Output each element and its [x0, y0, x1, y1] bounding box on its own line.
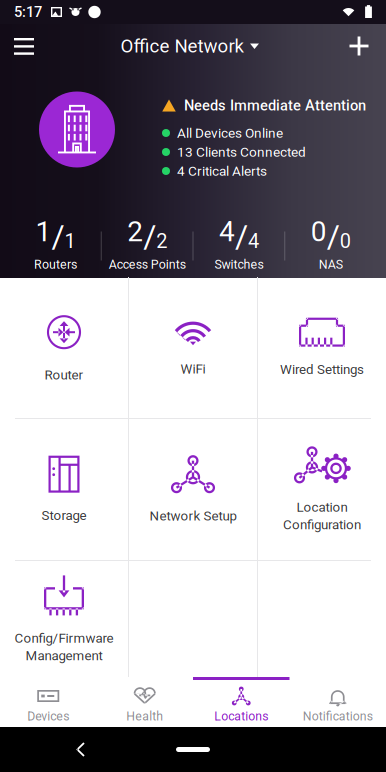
- staticText: Devices: [27, 709, 69, 723]
- staticText: 4: [248, 229, 259, 253]
- staticText: /: [51, 217, 64, 255]
- staticText: 0: [311, 215, 327, 248]
- staticText: Location: [296, 499, 347, 515]
- staticText: Health: [126, 709, 163, 723]
- staticText: 2: [127, 215, 143, 248]
- staticText: 13 Clients Connected: [177, 144, 306, 160]
- button[interactable]: Router: [0, 277, 128, 418]
- staticText: 0: [340, 229, 351, 253]
- staticText: Office Network: [120, 35, 243, 57]
- staticText: /: [235, 217, 248, 255]
- staticText: NAS: [319, 257, 343, 272]
- button[interactable]: Wired Settings: [258, 277, 386, 418]
- staticText: 4 Critical Alerts: [177, 163, 267, 179]
- button[interactable]: Storage: [0, 419, 128, 560]
- button[interactable]: Devices: [0, 677, 96, 727]
- staticText: Storage: [41, 508, 86, 523]
- staticText: /: [327, 217, 340, 255]
- staticText: 5:17: [14, 3, 42, 21]
- staticText: 1: [35, 215, 51, 248]
- button[interactable]: Location: [258, 419, 386, 560]
- staticText: 1: [64, 229, 75, 253]
- staticText: Network Setup: [149, 508, 236, 524]
- button[interactable]: Network Setup: [129, 419, 257, 560]
- staticText: /: [143, 217, 156, 255]
- staticText: Routers: [34, 257, 77, 272]
- staticText: All Devices Online: [177, 125, 283, 141]
- button[interactable]: Office Network: [120, 24, 259, 68]
- button[interactable]: Health: [96, 677, 193, 727]
- staticText: Configuration: [283, 517, 361, 533]
- staticText: Needs Immediate Attention: [184, 97, 366, 114]
- staticText: Locations: [214, 709, 268, 723]
- staticText: Management: [25, 648, 102, 664]
- staticText: 2: [156, 229, 167, 253]
- staticText: Notifications: [303, 709, 373, 723]
- button[interactable]: WiFi: [129, 277, 257, 418]
- button[interactable]: Add: [332, 24, 386, 68]
- staticText: Switches: [214, 257, 263, 272]
- staticText: Wired Settings: [280, 362, 364, 377]
- button[interactable]: Locations: [193, 677, 289, 727]
- staticText: Access Points: [109, 257, 186, 272]
- staticText: Config/Firmware: [14, 630, 113, 646]
- button[interactable]: Menu: [0, 24, 48, 68]
- button[interactable]: Config/Firmware: [0, 561, 128, 678]
- staticText: 4: [219, 215, 235, 248]
- staticText: Router: [44, 367, 83, 383]
- button[interactable]: Notifications: [289, 677, 386, 727]
- staticText: WiFi: [180, 361, 205, 377]
